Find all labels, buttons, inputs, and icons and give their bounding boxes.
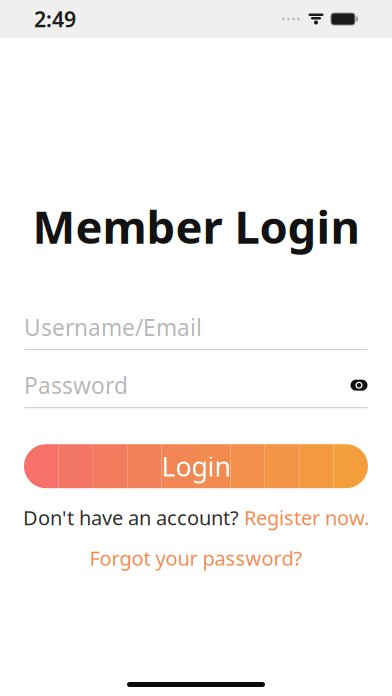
button[interactable]: Login [24,444,368,488]
staticText: Member Login [32,196,359,256]
staticText: Register now. [244,504,369,531]
staticText: Username/Email [24,312,202,342]
staticText: Don't have an account? [23,504,239,531]
staticText: Password [24,370,128,400]
button[interactable]: Don't have an account? [11,500,381,535]
button[interactable]: Forgot your password? [77,541,314,575]
staticText: 2:49 [34,5,76,33]
staticText: Forgot your password? [89,545,302,571]
staticText: Login [161,448,230,484]
button[interactable]: Show password [340,374,368,396]
